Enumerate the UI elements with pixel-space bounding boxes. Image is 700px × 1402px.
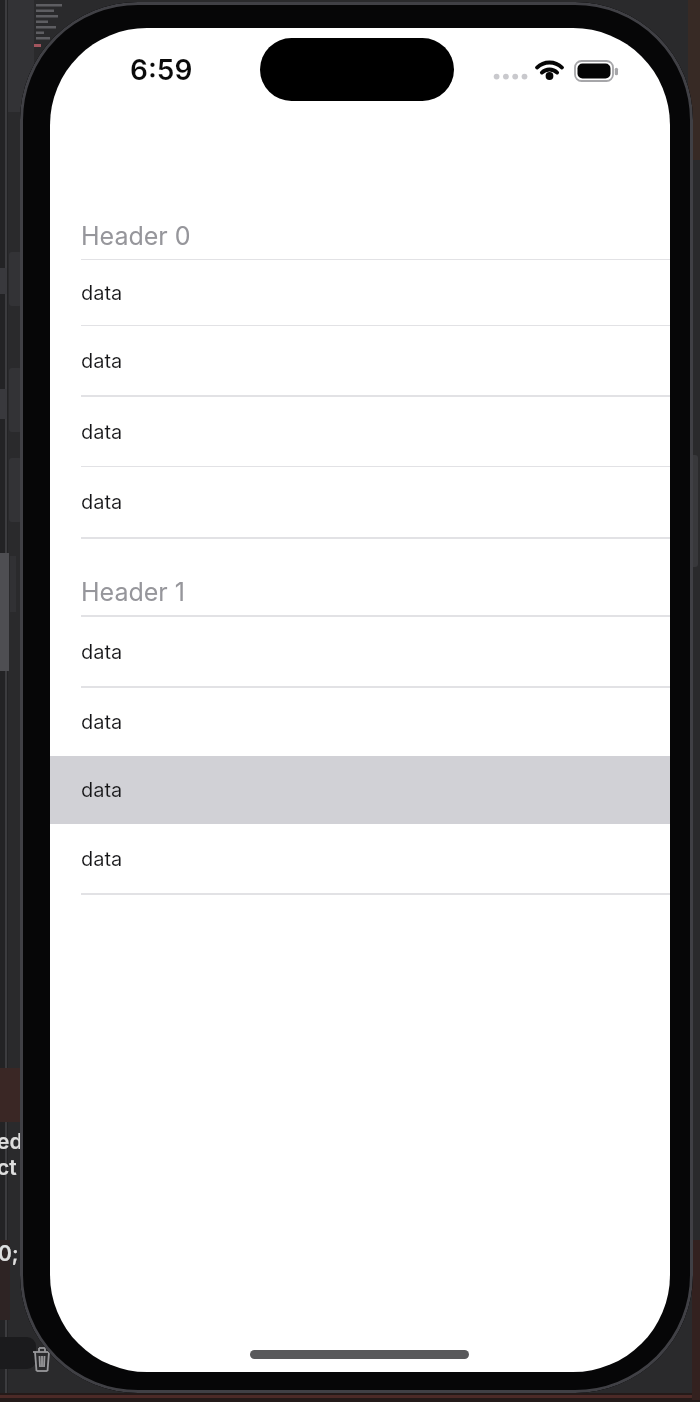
button[interactable]: data [50,326,670,395]
button[interactable]: data [50,260,670,325]
staticText: data [81,640,123,664]
button[interactable]: data [50,688,670,756]
button[interactable]: data [50,824,670,894]
staticText: 0; [0,1241,19,1266]
staticText: data [81,349,123,373]
staticText: data [81,847,123,871]
button[interactable]: data [50,756,670,824]
staticText: data [81,710,123,734]
staticText: ed [0,1129,23,1154]
staticText: ct [0,1155,17,1180]
staticText: data [81,778,123,802]
staticText: data [81,281,123,305]
button[interactable]: data [50,397,670,466]
staticText: 6:59 [130,53,193,87]
staticText: data [81,420,123,444]
button[interactable]: data [50,467,670,536]
button[interactable]: data [50,617,670,686]
staticText: Header 0 [81,221,191,251]
staticText: Header 1 [81,577,185,607]
staticText: data [81,490,123,514]
